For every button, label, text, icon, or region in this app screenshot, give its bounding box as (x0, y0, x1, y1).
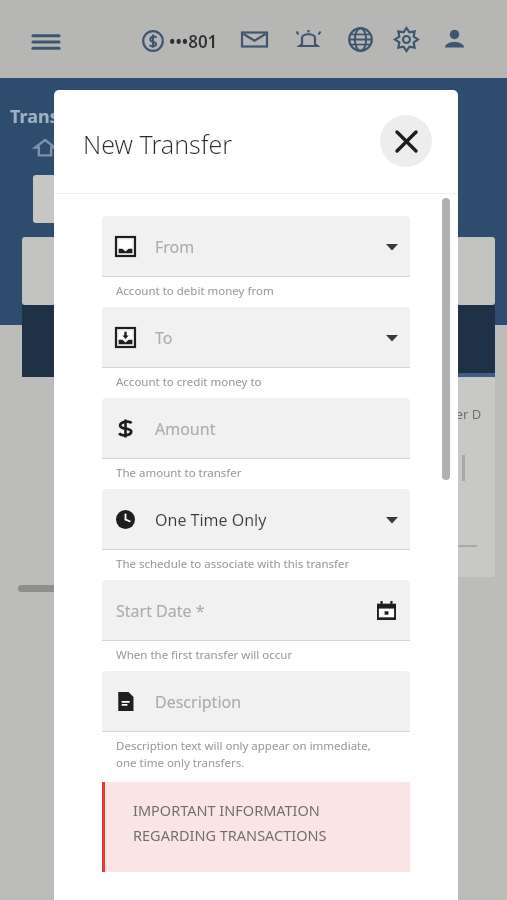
button[interactable]: Description (102, 671, 410, 732)
staticText: Description (155, 691, 242, 713)
staticText: When the first transfer will occur (116, 647, 293, 663)
staticText: From (155, 236, 195, 258)
staticText: Start Date * (116, 600, 205, 622)
staticText: The amount to transfer (116, 465, 242, 481)
button[interactable]: Profile (436, 21, 472, 57)
staticText: The schedule to associate with this tran… (116, 556, 350, 572)
staticText: Description text will only appear on imm… (116, 738, 371, 770)
button[interactable]: One Time Only (102, 489, 410, 550)
button[interactable]: •••801 (142, 24, 218, 58)
button[interactable]: Language (342, 21, 378, 57)
staticText: One Time Only (155, 509, 267, 531)
staticText: To (155, 327, 173, 349)
button[interactable]: Close (380, 115, 432, 167)
staticText: Transfer Dashboard (10, 104, 187, 129)
staticText: sfer D (445, 405, 482, 423)
button[interactable]: Settings (388, 21, 424, 57)
staticText: Account to debit money from (116, 283, 274, 299)
staticText: Account to credit money to (116, 374, 262, 390)
staticText: •••801 (169, 30, 218, 53)
button[interactable]: Amount (102, 398, 410, 459)
button[interactable]: From (102, 216, 410, 277)
staticText: IMPORTANT INFORMATION REGARDING TRANSACT… (133, 800, 327, 845)
staticText: New Transfer (83, 127, 233, 161)
button[interactable]: To (102, 307, 410, 368)
button[interactable]: Menu (26, 22, 66, 62)
button[interactable]: Messages (236, 21, 272, 57)
button[interactable]: Start Date * (102, 580, 410, 641)
button[interactable]: Notifications (290, 21, 326, 57)
staticText: Amount (155, 418, 216, 440)
